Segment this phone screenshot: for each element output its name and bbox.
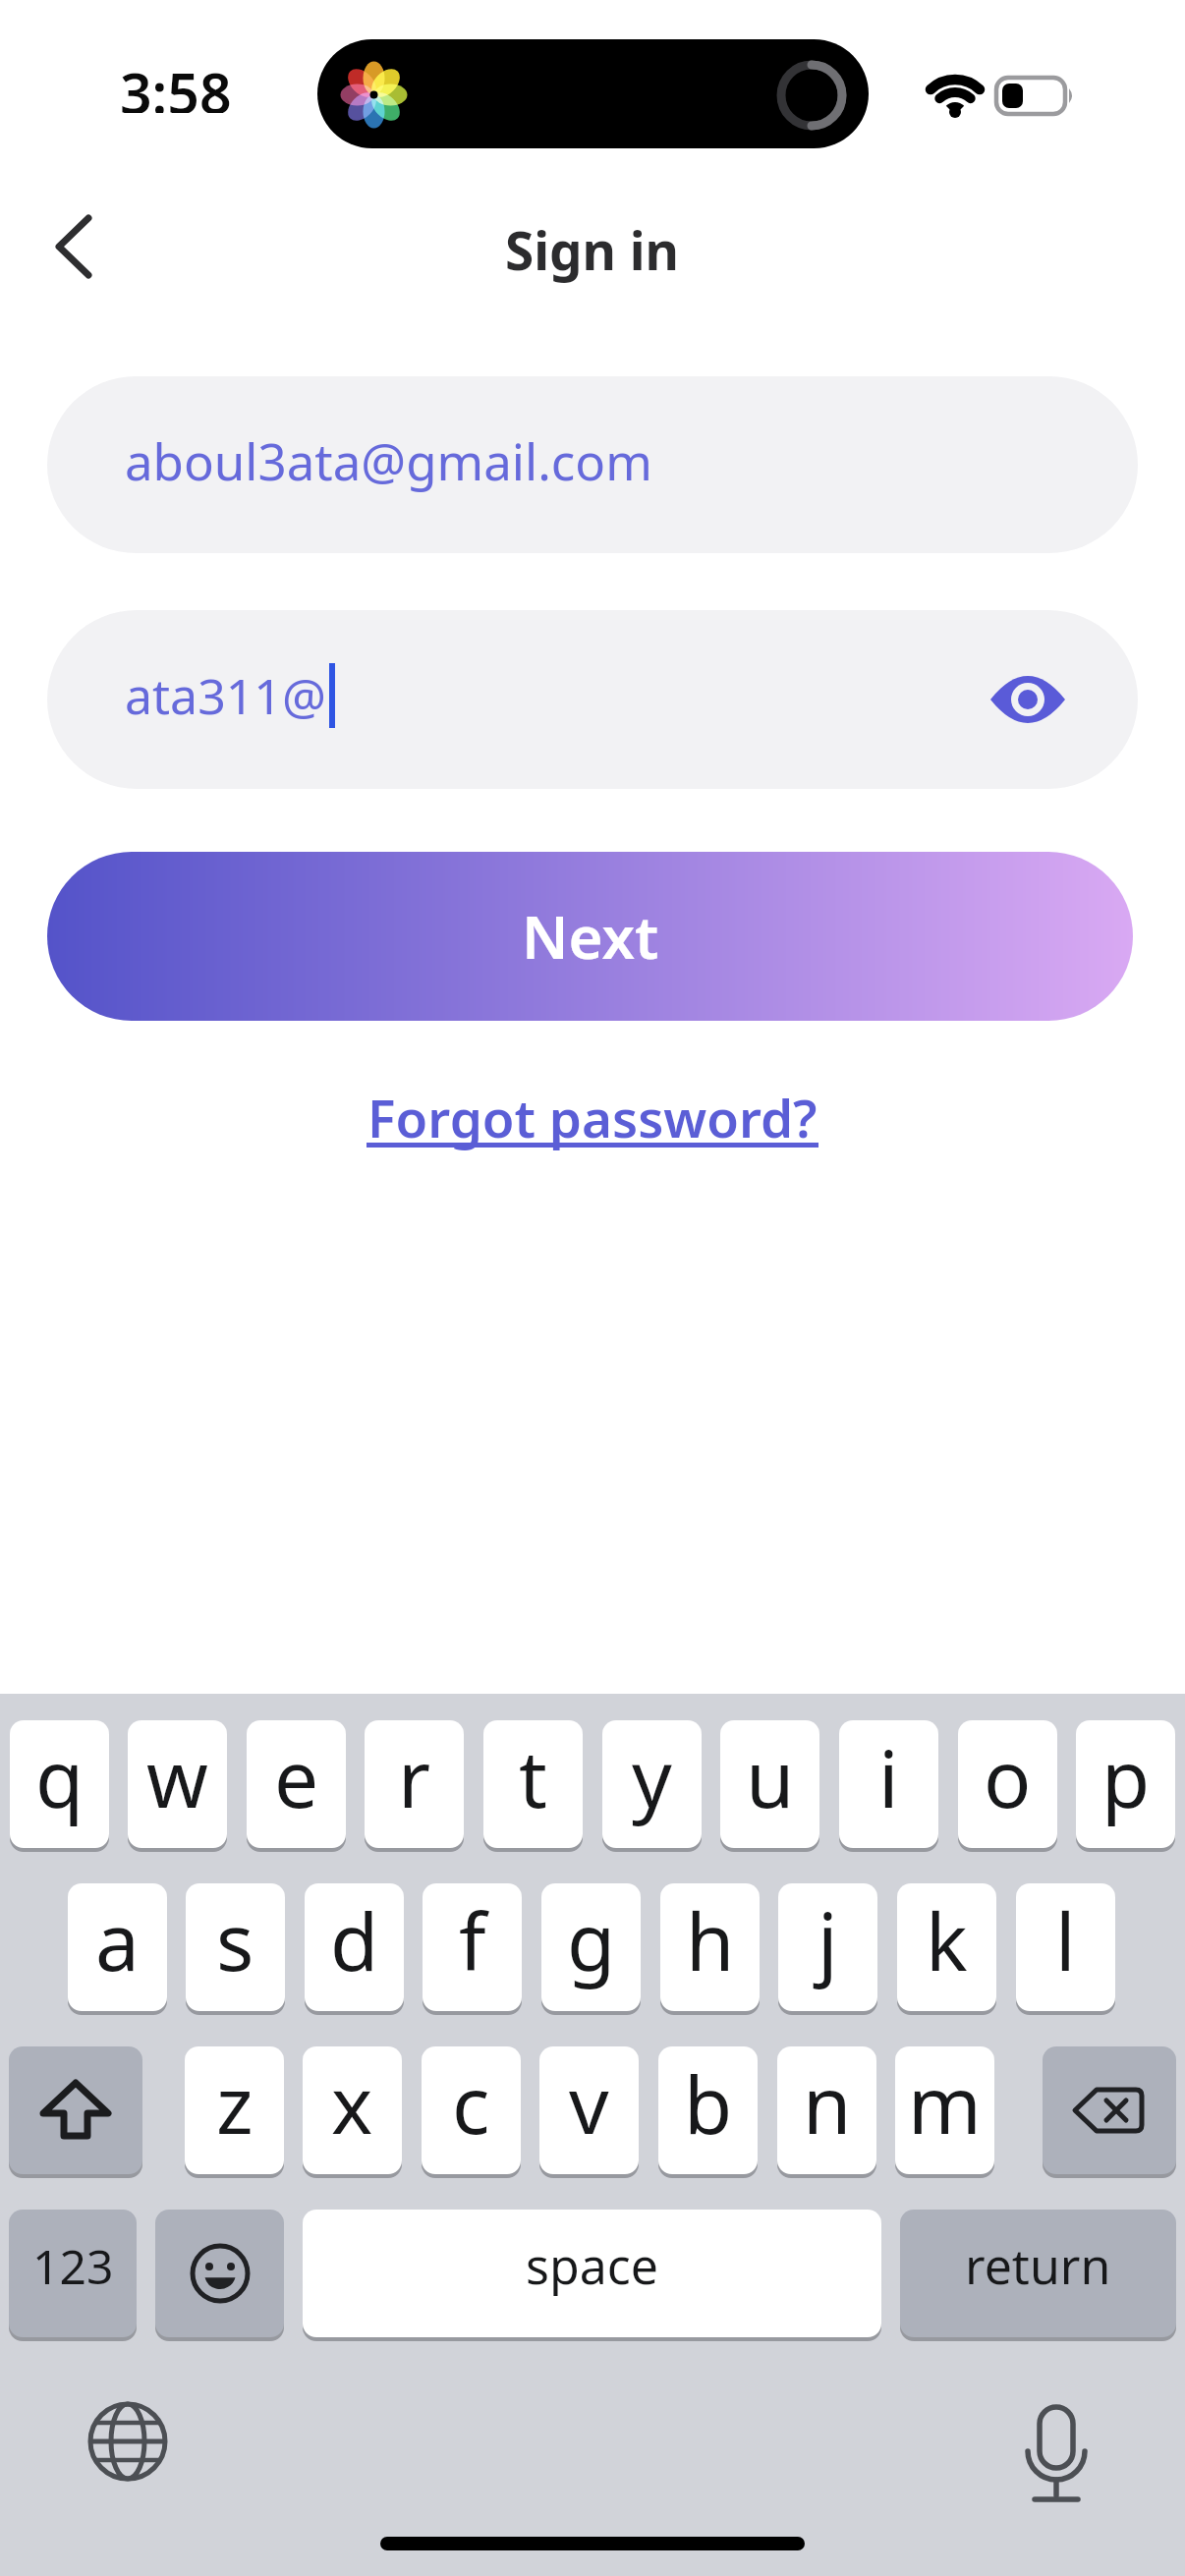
- staticText: y: [632, 1723, 672, 1830]
- staticText: m: [908, 2049, 982, 2156]
- button[interactable]: b: [658, 2046, 758, 2174]
- button[interactable]: t: [483, 1720, 583, 1848]
- button[interactable]: e: [247, 1720, 346, 1848]
- button[interactable]: a: [68, 1883, 167, 2011]
- staticText: Next: [522, 896, 659, 977]
- staticText: u: [746, 1723, 795, 1830]
- button[interactable]: x: [303, 2046, 402, 2174]
- staticText: f: [459, 1886, 486, 1993]
- staticText: o: [984, 1723, 1032, 1830]
- staticText: h: [686, 1886, 735, 1993]
- button[interactable]: ata311@: [47, 610, 1138, 789]
- button[interactable]: i: [839, 1720, 938, 1848]
- button[interactable]: [155, 2210, 284, 2337]
- staticText: x: [331, 2049, 373, 2156]
- staticText: b: [684, 2049, 733, 2156]
- button[interactable]: w: [128, 1720, 227, 1848]
- button[interactable]: r: [365, 1720, 464, 1848]
- staticText: s: [216, 1886, 254, 1993]
- staticText: q: [35, 1723, 85, 1830]
- button[interactable]: z: [185, 2046, 284, 2174]
- staticText: i: [878, 1723, 899, 1830]
- button[interactable]: 123: [9, 2210, 137, 2337]
- staticText: 123: [32, 2234, 114, 2298]
- staticText: e: [274, 1723, 319, 1830]
- button[interactable]: return: [900, 2210, 1176, 2337]
- button[interactable]: [1012, 2392, 1100, 2520]
- button[interactable]: q: [10, 1720, 109, 1848]
- button[interactable]: f: [423, 1883, 522, 2011]
- staticText: space: [526, 2232, 658, 2299]
- staticText: k: [926, 1886, 968, 1993]
- button[interactable]: j: [778, 1883, 877, 2011]
- staticText: v: [569, 2049, 609, 2156]
- button[interactable]: d: [305, 1883, 404, 2011]
- staticText: 3:58: [120, 54, 232, 113]
- staticText: return: [965, 2232, 1111, 2299]
- staticText: ata311@: [125, 662, 326, 729]
- staticText: j: [818, 1886, 838, 1993]
- staticText: p: [1101, 1723, 1151, 1830]
- button[interactable]: k: [897, 1883, 996, 2011]
- button[interactable]: o: [958, 1720, 1057, 1848]
- staticText: d: [330, 1886, 379, 1993]
- button[interactable]: Forgot password?: [367, 1082, 818, 1152]
- staticText: l: [1055, 1886, 1076, 1993]
- button[interactable]: g: [541, 1883, 641, 2011]
- button[interactable]: p: [1076, 1720, 1175, 1848]
- button[interactable]: c: [422, 2046, 521, 2174]
- button[interactable]: Next: [47, 852, 1133, 1021]
- staticText: t: [519, 1723, 547, 1830]
- button[interactable]: n: [777, 2046, 876, 2174]
- button[interactable]: s: [186, 1883, 285, 2011]
- staticText: r: [398, 1723, 431, 1830]
- staticText: w: [146, 1723, 208, 1830]
- button[interactable]: [35, 202, 114, 291]
- button[interactable]: [987, 665, 1069, 734]
- staticText: Sign in: [505, 214, 680, 285]
- staticText: aboul3ata@gmail.com: [125, 426, 652, 494]
- staticText: z: [216, 2049, 254, 2156]
- button[interactable]: h: [660, 1883, 760, 2011]
- button[interactable]: u: [720, 1720, 819, 1848]
- button[interactable]: [9, 2046, 142, 2174]
- button[interactable]: v: [539, 2046, 639, 2174]
- button[interactable]: l: [1016, 1883, 1115, 2011]
- button[interactable]: [1043, 2046, 1176, 2174]
- button[interactable]: y: [602, 1720, 702, 1848]
- staticText: n: [803, 2049, 852, 2156]
- button[interactable]: m: [895, 2046, 994, 2174]
- button[interactable]: space: [303, 2210, 881, 2337]
- button[interactable]: [84, 2397, 172, 2486]
- button[interactable]: aboul3ata@gmail.com: [47, 376, 1138, 553]
- staticText: a: [95, 1886, 140, 1993]
- staticText: g: [567, 1886, 616, 1993]
- staticText: c: [452, 2049, 490, 2156]
